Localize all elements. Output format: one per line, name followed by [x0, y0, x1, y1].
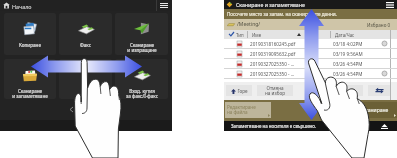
staticText: Горе — [237, 88, 248, 94]
staticText: Сканиране — [362, 107, 389, 114]
staticText: 20190327025350 - ... — [250, 61, 295, 67]
staticText: Име — [252, 32, 262, 38]
staticText: Копиране — [19, 42, 41, 48]
button[interactable]: 20190318160245.pdf — [224, 39, 397, 49]
button[interactable]: Отмяна на избор — [257, 85, 293, 96]
button[interactable]: Menu — [383, 0, 397, 9]
button[interactable]: Switch order — [368, 85, 390, 96]
staticText: 03/19 9:56AM — [333, 51, 363, 57]
button[interactable]: Previous page — [67, 105, 76, 114]
staticText: 03/26 4:54PM — [333, 61, 363, 67]
staticText: Избрано 0 — [367, 22, 391, 28]
staticText: /Meeting/ — [237, 21, 261, 28]
button[interactable]: 20190327025350 - ... — [224, 69, 397, 79]
staticText: Тип — [236, 32, 244, 38]
button[interactable]: Горе — [226, 85, 252, 96]
staticText: Редактиране на файла — [227, 104, 256, 116]
staticText: Дата/Час — [335, 32, 355, 38]
button[interactable]: Сканиране — [354, 102, 397, 118]
staticText: Сканиране и запаметяване — [12, 88, 48, 99]
button[interactable] — [59, 59, 112, 99]
button[interactable]: 20190327025350 - ... — [224, 59, 397, 69]
staticText: Запаметяване на носителя е свършено. — [231, 123, 317, 129]
button[interactable]: ...ране — [333, 85, 363, 96]
staticText: Факс — [80, 42, 91, 48]
staticText: ...ране — [341, 88, 356, 94]
staticText: 03/26 4:54PM — [333, 71, 363, 77]
button[interactable]: Копиране — [4, 13, 56, 55]
staticText: Начало — [12, 3, 32, 10]
button[interactable]: 20190319095632.pdf — [224, 49, 397, 59]
staticText: Посочете място за запам. на сканираните … — [227, 11, 337, 17]
button[interactable]: Вход. кутия за факс/I-факс — [115, 59, 168, 99]
staticText: Отмяна на избор — [265, 85, 285, 96]
staticText: 20190318160245.pdf — [250, 41, 296, 47]
button[interactable]: Факс — [59, 13, 112, 55]
staticText: 20190319095632.pdf — [250, 51, 296, 57]
staticText: 20190327025350 - ... — [250, 71, 295, 77]
button[interactable]: Menu — [156, 0, 172, 11]
staticText: Сканиране и запаметяване — [236, 1, 305, 8]
button[interactable]: Редактиране на файла — [225, 102, 271, 118]
button[interactable]: Сканиране и запаметяване — [4, 59, 56, 99]
button[interactable]: Сканиране и изпращане — [115, 13, 168, 55]
staticText: Вход. кутия за факс/I-факс — [126, 88, 158, 99]
staticText: Сканиране и изпращане — [127, 42, 157, 54]
staticText: 03/18 4:02PM — [333, 41, 363, 47]
